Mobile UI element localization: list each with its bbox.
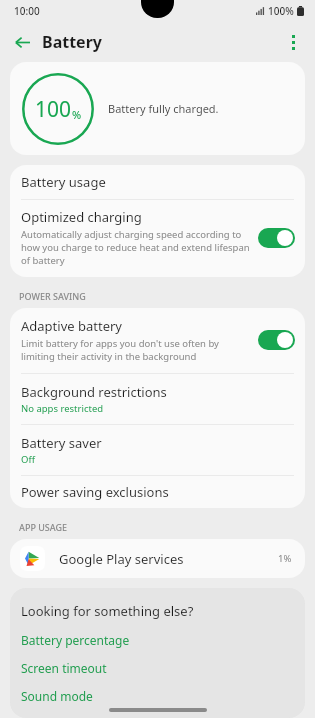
staticText: Automatically adjust charging speed acco… — [21, 228, 250, 267]
staticText: APP USAGE — [19, 521, 68, 533]
staticText: Google Play services — [59, 550, 278, 568]
button[interactable]: Battery saver — [10, 425, 305, 475]
staticText: Adaptive battery — [21, 317, 122, 335]
staticText: Battery saver — [21, 434, 102, 452]
button[interactable]: Toggle on — [258, 330, 295, 350]
staticText: Sound mode — [21, 688, 93, 704]
staticText: Battery fully charged. — [108, 101, 219, 116]
staticText: Limit battery for apps you don't use oft… — [21, 337, 250, 363]
staticText: Battery — [42, 31, 102, 53]
button[interactable]: Battery usage — [10, 165, 305, 199]
button[interactable]: Screen timeout — [21, 660, 305, 676]
staticText: Power saving exclusions — [21, 483, 169, 501]
staticText: 100% — [268, 4, 294, 18]
staticText: Screen timeout — [21, 660, 107, 676]
button[interactable]: Adaptive battery — [10, 308, 305, 373]
staticText: 10:00 — [14, 4, 40, 18]
staticText: Looking for something else? — [21, 602, 194, 620]
button[interactable]: Back — [6, 26, 38, 58]
staticText: Optimized charging — [21, 208, 142, 226]
staticText: Background restrictions — [21, 383, 167, 401]
button[interactable]: More options — [277, 26, 309, 58]
button[interactable]: Optimized charging — [10, 200, 305, 277]
staticText: % — [72, 107, 82, 122]
button[interactable]: Battery percentage — [21, 632, 305, 648]
staticText: 1% — [278, 552, 292, 565]
button[interactable]: Google Play services — [10, 539, 305, 578]
button[interactable]: Background restrictions — [10, 374, 305, 424]
button[interactable]: Sound mode — [21, 688, 305, 704]
staticText: POWER SAVING — [19, 290, 86, 302]
button[interactable]: Toggle on — [258, 228, 295, 248]
staticText: No apps restricted — [21, 402, 104, 415]
staticText: Battery usage — [21, 173, 106, 191]
staticText: Off — [21, 453, 35, 466]
button[interactable]: Power saving exclusions — [10, 476, 305, 508]
staticText: Battery percentage — [21, 632, 130, 648]
staticText: 100 — [35, 95, 72, 124]
